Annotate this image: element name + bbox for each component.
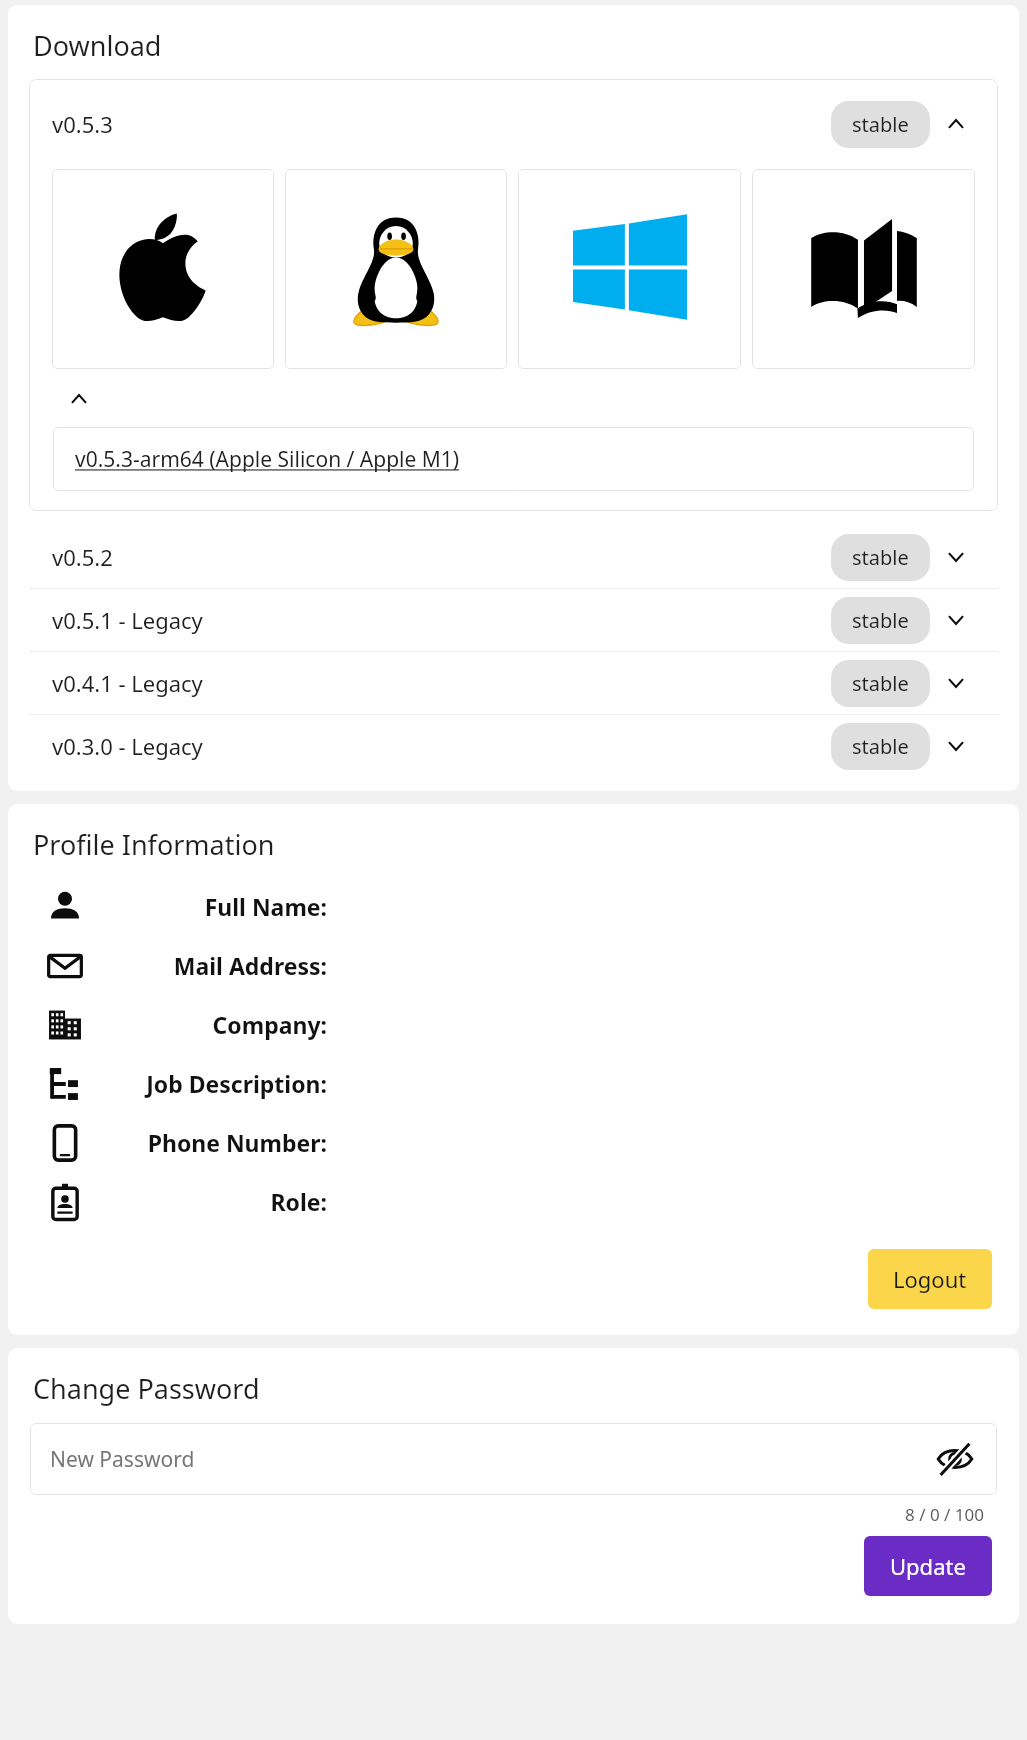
staticText: v0.4.1 - Legacy xyxy=(52,668,203,698)
staticText: Mail Address: xyxy=(173,950,327,981)
staticText: Phone Number: xyxy=(147,1127,327,1158)
button[interactable]: v0.5.1 - Legacy xyxy=(29,589,998,651)
staticText: Company: xyxy=(212,1009,327,1040)
staticText: stable xyxy=(852,670,909,697)
button[interactable]: Windows download xyxy=(518,169,741,369)
staticText: v0.5.2 xyxy=(52,542,113,572)
staticText: v0.5.3 xyxy=(52,109,113,139)
staticText: 8 / 0 / 100 xyxy=(905,1503,984,1526)
staticText: stable xyxy=(852,544,909,571)
button[interactable]: Collapse downloads xyxy=(55,375,103,423)
button[interactable]: macOS download xyxy=(52,169,274,369)
staticText: v0.5.3-arm64 (Apple Silicon / Apple M1) xyxy=(75,445,460,474)
staticText: v0.5.1 - Legacy xyxy=(52,605,203,635)
button[interactable]: v0.5.3 xyxy=(29,79,998,169)
button[interactable]: Update xyxy=(864,1536,992,1596)
button[interactable]: Documentation xyxy=(752,169,975,369)
staticText: Full Name: xyxy=(204,891,327,922)
staticText: Update xyxy=(890,1551,966,1581)
button[interactable]: Linux download xyxy=(285,169,507,369)
button[interactable]: v0.4.1 - Legacy xyxy=(29,652,998,714)
button[interactable]: New Password xyxy=(30,1423,997,1495)
staticText: Change Password xyxy=(33,1370,260,1407)
button[interactable]: v0.3.0 - Legacy xyxy=(29,715,998,777)
button[interactable]: Toggle password visibility xyxy=(931,1435,979,1483)
staticText: Profile Information xyxy=(33,826,275,863)
button[interactable]: v0.5.2 xyxy=(29,526,998,588)
button[interactable]: Logout xyxy=(868,1249,992,1309)
staticText: Download xyxy=(33,27,162,64)
staticText: stable xyxy=(852,607,909,634)
staticText: Job Description: xyxy=(146,1068,327,1099)
staticText: Role: xyxy=(270,1186,327,1217)
staticText: Logout xyxy=(893,1264,967,1294)
staticText: v0.3.0 - Legacy xyxy=(52,731,203,761)
button[interactable]: v0.5.3-arm64 (Apple Silicon / Apple M1) xyxy=(53,427,974,491)
staticText: New Password xyxy=(50,1445,195,1474)
staticText: stable xyxy=(852,111,909,138)
staticText: stable xyxy=(852,733,909,760)
